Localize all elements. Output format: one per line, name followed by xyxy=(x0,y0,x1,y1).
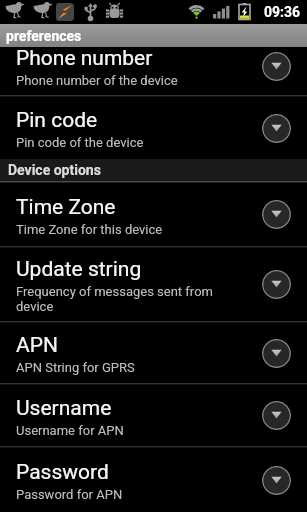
staticText: Phone number xyxy=(16,47,153,71)
staticText: 09:36 xyxy=(264,4,301,20)
staticText: APN xyxy=(16,333,58,358)
button[interactable]: Expand xyxy=(262,339,291,368)
staticText: Pin code xyxy=(16,108,98,133)
staticText: APN String for GPRS xyxy=(16,360,135,375)
button[interactable]: APN xyxy=(0,323,307,383)
staticText: Update string xyxy=(16,257,142,282)
staticText: Pin code of the device xyxy=(16,135,144,150)
staticText: Phone number of the device xyxy=(16,73,178,88)
staticText: preferences xyxy=(6,28,82,44)
button[interactable]: Time Zone xyxy=(0,183,307,246)
button[interactable]: Pin code xyxy=(0,97,307,159)
button[interactable]: Expand xyxy=(262,401,291,430)
staticText: Device options xyxy=(8,162,101,178)
button[interactable]: Expand xyxy=(262,200,291,229)
staticText: Time Zone for this device xyxy=(16,222,163,237)
staticText: Password for APN xyxy=(16,487,123,502)
button[interactable]: Password xyxy=(0,448,307,512)
button[interactable]: Username xyxy=(0,385,307,446)
button[interactable]: Expand xyxy=(262,270,291,299)
button[interactable]: Expand xyxy=(262,114,291,143)
staticText: Username xyxy=(16,396,112,421)
staticText: Frequency of messages sent from device xyxy=(16,284,217,314)
staticText: Username for APN xyxy=(16,423,124,438)
button[interactable]: Expand xyxy=(262,52,291,81)
button[interactable]: Phone number xyxy=(0,47,307,95)
button[interactable]: Expand xyxy=(262,466,291,495)
button[interactable]: Update string xyxy=(0,248,307,321)
staticText: Password xyxy=(16,460,109,485)
staticText: Time Zone xyxy=(16,195,116,220)
